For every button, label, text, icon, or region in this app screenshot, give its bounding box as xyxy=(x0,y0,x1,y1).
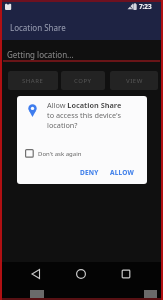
staticText: Allow Location Share to access this devi… xyxy=(47,100,122,130)
staticText: COPY xyxy=(74,77,92,85)
staticText: Getting location... xyxy=(7,49,74,60)
button[interactable]: DENY xyxy=(76,165,103,179)
button[interactable]: ALLOW xyxy=(105,165,139,179)
button[interactable] xyxy=(28,266,44,282)
staticText: VIEW xyxy=(126,77,143,85)
button[interactable] xyxy=(118,266,134,282)
staticText: Location Share xyxy=(10,22,66,33)
staticText: SHARE xyxy=(22,77,44,85)
button[interactable]: Don't ask again xyxy=(25,148,85,160)
staticText: ALLOW xyxy=(110,168,134,177)
button[interactable] xyxy=(73,266,89,282)
staticText: 7:23 xyxy=(139,2,152,11)
button[interactable]: SHARE xyxy=(8,71,58,90)
staticText: Don't ask again xyxy=(38,150,82,158)
staticText: DENY xyxy=(80,168,99,177)
button[interactable]: VIEW xyxy=(110,71,158,90)
button[interactable]: COPY xyxy=(61,71,105,90)
